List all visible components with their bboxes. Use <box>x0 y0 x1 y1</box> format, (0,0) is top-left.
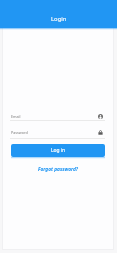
staticText: Password <box>11 130 28 135</box>
button[interactable]: Log in <box>11 144 105 157</box>
other: Show password <box>98 130 103 135</box>
button[interactable]: Login <box>0 11 117 27</box>
other: Account <box>98 114 103 119</box>
button[interactable]: Email <box>10 110 105 121</box>
button[interactable]: Password <box>10 126 105 137</box>
staticText: Log in <box>51 147 66 154</box>
button[interactable]: Forgot password? <box>38 166 79 173</box>
staticText: Email <box>11 114 21 119</box>
staticText: Login <box>51 15 67 23</box>
